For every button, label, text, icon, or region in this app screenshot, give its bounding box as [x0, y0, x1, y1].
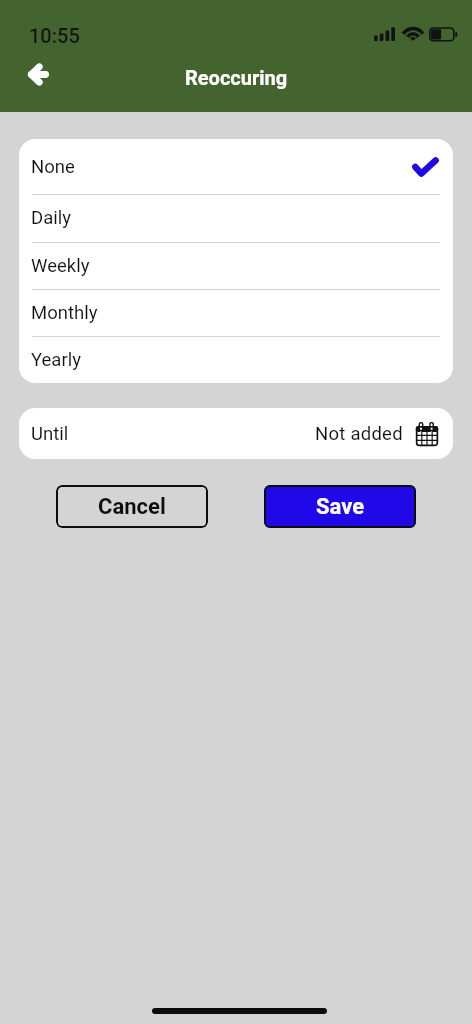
button[interactable]: Back — [16, 52, 60, 96]
staticText: Cancel — [98, 494, 166, 520]
button[interactable]: Until — [19, 408, 453, 459]
button[interactable]: Yearly — [19, 336, 453, 383]
staticText: 10:55 — [29, 24, 80, 47]
button[interactable]: Weekly — [19, 242, 453, 289]
button[interactable]: Daily — [19, 194, 453, 242]
staticText: Reoccuring — [185, 66, 288, 89]
staticText: Until — [31, 423, 69, 445]
staticText: Yearly — [31, 349, 81, 371]
staticText: Weekly — [31, 255, 90, 277]
button[interactable]: Monthly — [19, 289, 453, 336]
button[interactable]: Save — [264, 485, 416, 528]
button[interactable]: Cancel — [56, 485, 208, 528]
staticText: Not added — [315, 423, 403, 445]
staticText: Save — [316, 494, 365, 520]
staticText: Monthly — [31, 302, 98, 324]
staticText: Daily — [31, 207, 71, 229]
button[interactable]: None — [19, 139, 453, 194]
staticText: None — [31, 156, 75, 178]
